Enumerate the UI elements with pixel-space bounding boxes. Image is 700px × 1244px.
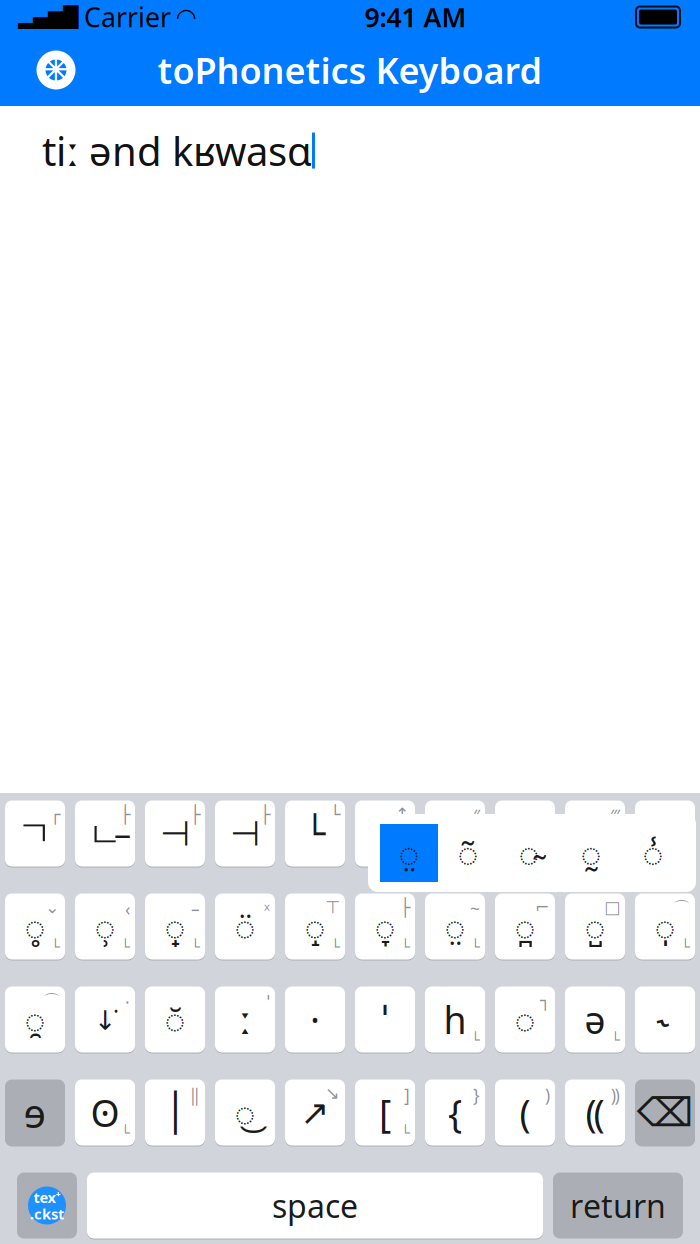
staticText: ◌̞ [374, 903, 395, 949]
button[interactable]: ʘ [75, 1078, 135, 1146]
button[interactable]: ɘ [5, 1078, 65, 1146]
button[interactable]: Settings [24, 43, 88, 97]
staticText: [ [379, 1088, 391, 1137]
staticText: ‴ [610, 804, 620, 827]
button[interactable]: ◌̥ [5, 892, 65, 960]
button[interactable]: h [425, 985, 485, 1053]
button[interactable]: ↗ [285, 1078, 345, 1146]
staticText: ◌̝ [304, 903, 325, 949]
staticText: ɘ [23, 1086, 46, 1139]
staticText: ◌̾ [642, 830, 663, 876]
staticText: ├ [120, 804, 130, 824]
staticText: ″ [473, 804, 480, 827]
staticText: ㄴ̵ [87, 810, 122, 856]
staticText: └ [191, 939, 200, 955]
staticText: ʘ [90, 1088, 119, 1137]
staticText: · [310, 995, 320, 1044]
button[interactable]: space [87, 1171, 543, 1239]
staticText: ◌ [514, 996, 535, 1042]
staticText: } [473, 1083, 480, 1106]
button[interactable]: Key [425, 799, 485, 867]
button[interactable]: ㄴ̵ [75, 799, 135, 867]
button[interactable]: ◌̞ [355, 892, 415, 960]
staticText: └ [121, 1125, 130, 1141]
staticText: ⊤ [325, 897, 340, 917]
button[interactable]: ◌̈ [215, 892, 275, 960]
button[interactable]: ◌ [495, 985, 555, 1053]
staticText: ⊣ [160, 814, 190, 853]
staticText: return [570, 1184, 666, 1227]
staticText: └ [51, 939, 60, 955]
button[interactable]: Key [565, 799, 625, 867]
staticText: ( [519, 1088, 530, 1137]
button[interactable]: ⊣ [145, 799, 205, 867]
staticText: ⌐ [535, 897, 550, 917]
staticText: ↓̇ [94, 1002, 116, 1037]
staticText: ˈ [267, 990, 270, 1013]
button[interactable]: ͜ [215, 1078, 275, 1146]
staticText: ↘ [325, 1083, 340, 1103]
staticText: ː [239, 995, 251, 1044]
button[interactable]: ˈ [355, 985, 415, 1053]
staticText: ) [545, 1083, 550, 1106]
staticText: ◌̯ [24, 996, 45, 1042]
button[interactable]: [ [355, 1078, 415, 1146]
button[interactable]: ◌̆ [145, 985, 205, 1053]
button[interactable]: ↓̇ [75, 985, 135, 1053]
button[interactable]: Next keyboard [17, 1172, 77, 1238]
button[interactable]: ⸨ [565, 1078, 625, 1146]
button[interactable]: ◌̟ [145, 892, 205, 960]
staticText: └ [611, 1032, 620, 1048]
staticText: ↑ [395, 804, 410, 824]
staticText: – [191, 897, 200, 920]
button[interactable]: return [553, 1172, 683, 1238]
button[interactable]: · [285, 985, 345, 1053]
staticText: └ [471, 939, 480, 955]
button[interactable]: ə [565, 985, 625, 1053]
button[interactable]: ◌̝ [285, 892, 345, 960]
staticText: ◌̩ [654, 903, 675, 949]
button[interactable]: ㄱ [5, 799, 65, 867]
staticText: └ [471, 1032, 480, 1048]
button[interactable]: ⊣ [215, 799, 275, 867]
button[interactable]: ◌̺ [565, 892, 625, 960]
staticText: ˣ [264, 897, 270, 920]
button[interactable]: ː [215, 985, 275, 1053]
button[interactable]: { [425, 1078, 485, 1146]
staticText: ✳ [37, 44, 75, 96]
staticText: ◌̈ [234, 903, 255, 949]
staticText: space [272, 1184, 358, 1227]
button[interactable]: Key [635, 799, 695, 867]
button[interactable]: Key [355, 799, 415, 867]
staticText: □ [604, 897, 620, 917]
button[interactable]: ⌫ [635, 1078, 695, 1146]
staticText: ˞ [660, 996, 669, 1042]
staticText: ├ [260, 804, 270, 824]
staticText: ⌄ [45, 897, 60, 917]
staticText: └ [401, 939, 410, 955]
staticText: ⌒ [673, 897, 690, 919]
button[interactable]: └ [285, 799, 345, 867]
staticText: ┐ [540, 990, 550, 1010]
button[interactable]: Key [495, 799, 555, 867]
staticText: ~ [470, 897, 480, 920]
button[interactable]: ◌̯ [5, 985, 65, 1053]
staticText: ◌̃ [457, 830, 478, 876]
button[interactable]: ◌̪ [495, 892, 555, 960]
staticText: ◠ [177, 3, 195, 31]
button[interactable]: ◌̹ [75, 892, 135, 960]
staticText: ├ [190, 804, 200, 824]
staticText: │ [164, 1091, 186, 1134]
button[interactable]: ( [495, 1078, 555, 1146]
button[interactable]: ◌̤ [425, 892, 485, 960]
button[interactable]: │ [145, 1078, 205, 1146]
staticText: ˈ [382, 995, 388, 1044]
staticText: └ [121, 939, 130, 955]
staticText: ⌒ [43, 990, 60, 1012]
button[interactable]: ˞ [635, 985, 695, 1053]
staticText: h [443, 995, 466, 1044]
staticText: ◌̟ [164, 903, 185, 949]
staticText: ⊣ [230, 814, 260, 853]
staticText: ↗ [300, 1093, 329, 1132]
button[interactable]: ◌̩ [635, 892, 695, 960]
